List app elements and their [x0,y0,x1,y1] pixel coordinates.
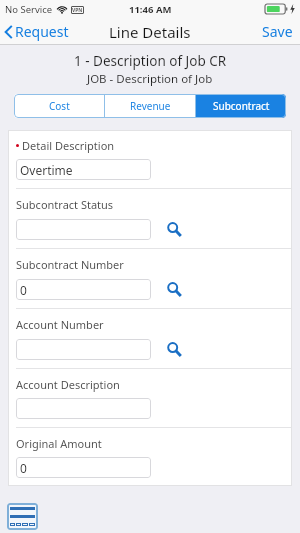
staticText: 0 [20,282,27,298]
staticText: Subcontract Number [16,257,124,272]
button[interactable]: Account Description [8,369,292,427]
button[interactable]: Revenue [105,94,195,118]
button[interactable]: Save [255,18,300,45]
staticText: No Service [5,3,53,16]
button[interactable]: Search Subcontract Number [163,278,185,300]
staticText: VPN [72,7,83,14]
button[interactable]: Accessibility keyboard [7,503,38,530]
staticText: Save [262,22,293,41]
staticText: 1 - Description of Job CR [74,52,227,70]
staticText: 0 [20,460,27,476]
button[interactable]: Search Subcontract Status [163,218,185,240]
staticText: Detail Description [22,138,115,153]
button[interactable]: Subcontract [196,94,286,118]
staticText: Account Number [16,317,104,332]
button[interactable]: Account Number [8,309,292,368]
button[interactable]: Request [0,19,77,44]
staticText: Original Amount [16,436,102,451]
staticText: Revenue [130,99,171,113]
button[interactable]: Search Account Number [163,338,185,360]
button[interactable]: Original Amount [8,428,292,486]
staticText: Account Description [16,377,120,392]
staticText: Subcontract [213,99,270,113]
staticText: Subcontract Status [16,197,114,212]
button[interactable]: Detail Description [8,130,292,188]
staticText: Overtime [20,162,73,178]
staticText: JOB - Description of Job [87,71,213,87]
staticText: 11:46 AM [129,3,172,16]
staticText: Line Details [109,22,191,42]
button[interactable]: Subcontract Status [8,189,292,248]
button[interactable]: Subcontract Number [8,249,292,308]
button[interactable]: Cost [14,94,104,118]
staticText: Request [15,22,69,41]
staticText: Cost [49,99,70,113]
